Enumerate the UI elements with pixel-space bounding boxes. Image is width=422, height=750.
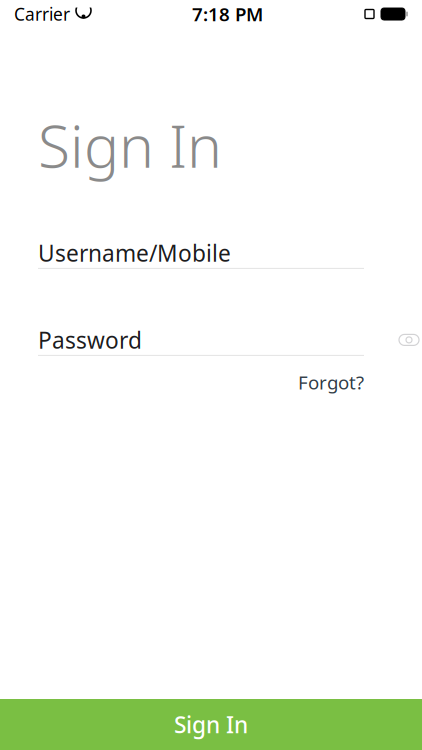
staticText: 7:18 PM [192,2,263,26]
button[interactable]: Sign In [0,699,422,750]
staticText [70,2,75,25]
staticText: Password [38,325,142,355]
button[interactable]: Forgot? [298,366,364,399]
staticText: Carrier [14,2,70,25]
staticText: Sign In [38,106,222,184]
staticText: Sign In [174,709,248,739]
staticText [376,2,381,25]
button[interactable]: Show password [396,329,422,351]
staticText: Username/Mobile [38,238,231,268]
staticText: Forgot? [298,370,364,395]
